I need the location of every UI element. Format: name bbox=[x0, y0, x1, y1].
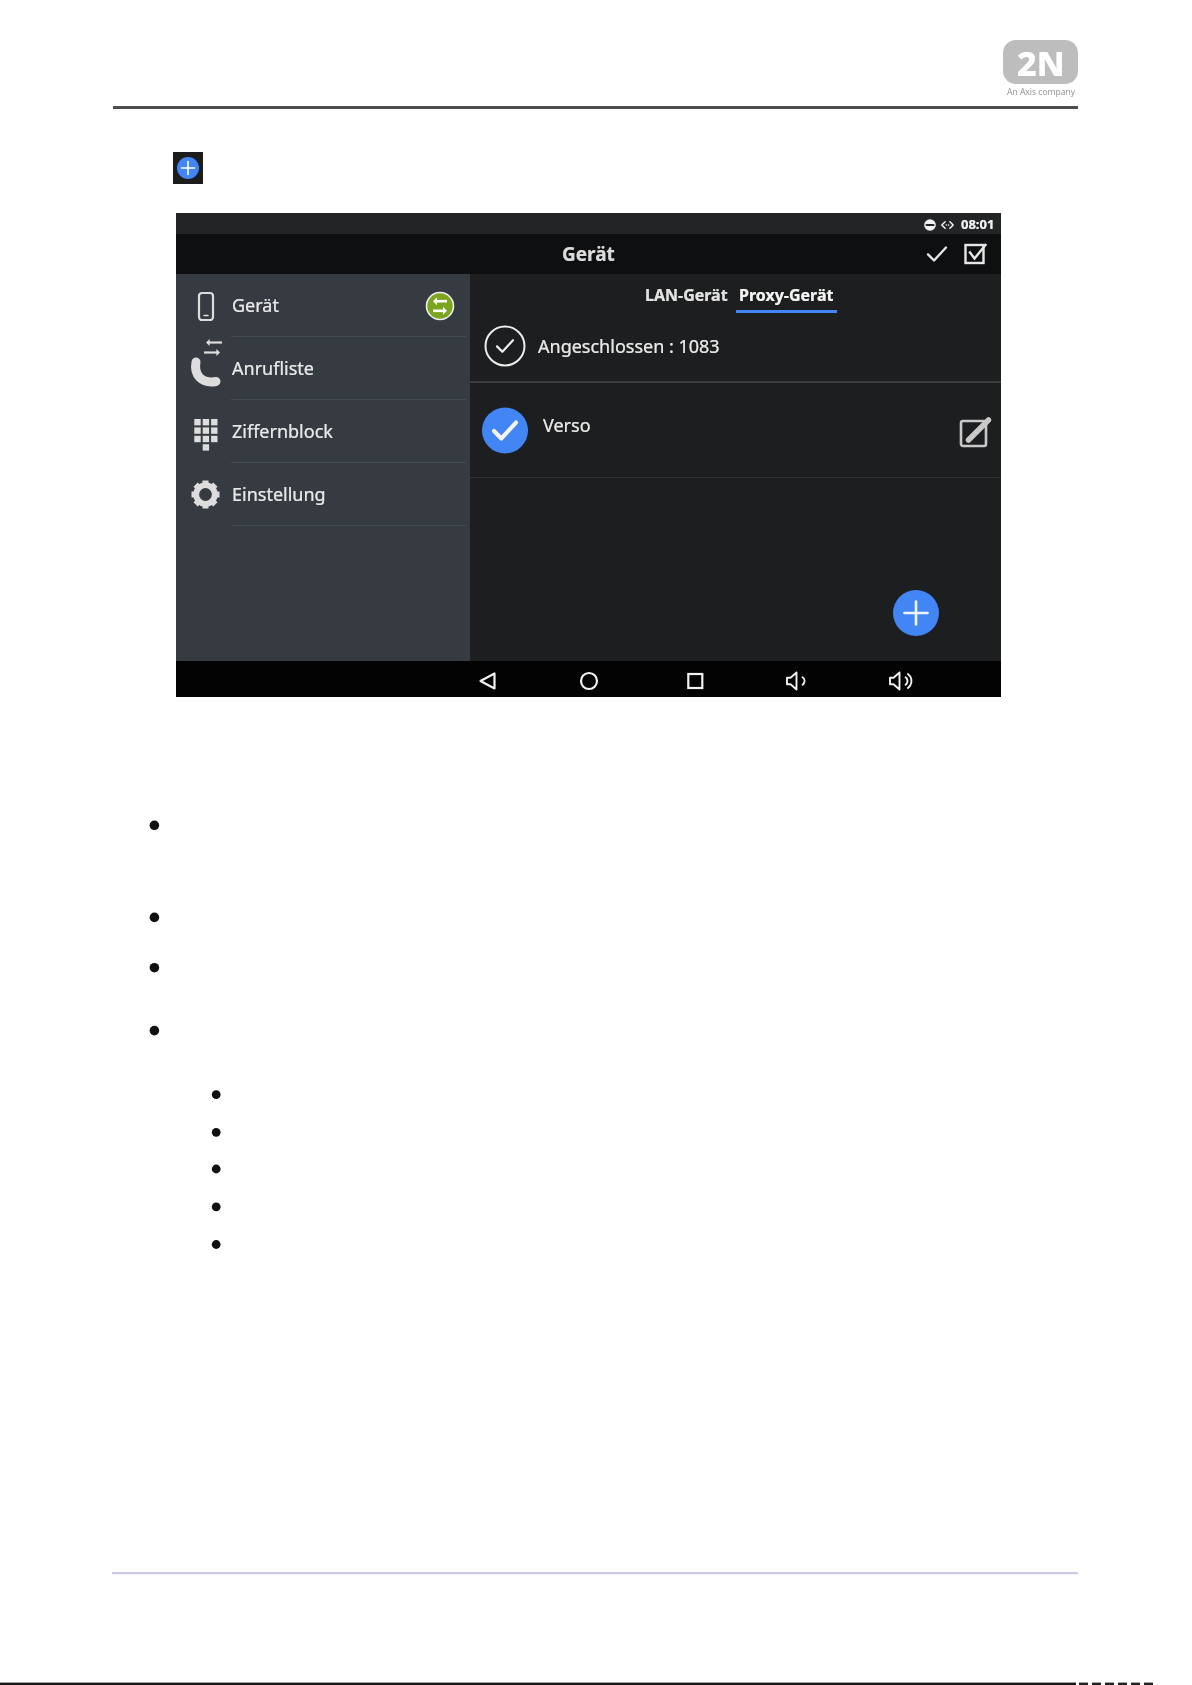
staticText: Gerät bbox=[562, 241, 615, 267]
button[interactable] bbox=[881, 661, 921, 697]
staticText: 2N bbox=[1017, 40, 1065, 84]
button[interactable] bbox=[176, 274, 470, 337]
staticText: Verso bbox=[543, 413, 591, 438]
button[interactable] bbox=[176, 337, 470, 400]
staticText: An Axis company bbox=[1007, 86, 1076, 98]
button[interactable] bbox=[956, 415, 992, 451]
button[interactable]: LAN-Gerät bbox=[636, 278, 736, 312]
button[interactable] bbox=[467, 661, 507, 697]
staticText: Gerät bbox=[232, 293, 279, 318]
button[interactable] bbox=[569, 661, 609, 697]
button[interactable] bbox=[176, 400, 470, 463]
button[interactable] bbox=[173, 152, 203, 184]
button[interactable] bbox=[675, 661, 715, 697]
staticText: Ziffernblock bbox=[232, 419, 333, 444]
staticText: 08:01 bbox=[961, 215, 995, 233]
button[interactable] bbox=[470, 383, 1001, 477]
button[interactable] bbox=[777, 661, 817, 697]
button[interactable] bbox=[893, 590, 939, 636]
button[interactable] bbox=[176, 463, 470, 526]
staticText: Angeschlossen : 1083 bbox=[538, 334, 720, 359]
staticText: Anrufliste bbox=[232, 356, 314, 381]
staticText: Proxy-Gerät bbox=[739, 284, 834, 306]
button[interactable]: Proxy-Gerät bbox=[736, 278, 837, 312]
staticText: Einstellung bbox=[232, 482, 326, 507]
button[interactable] bbox=[959, 239, 995, 269]
button[interactable] bbox=[917, 239, 957, 269]
staticText: LAN-Gerät bbox=[645, 284, 728, 306]
